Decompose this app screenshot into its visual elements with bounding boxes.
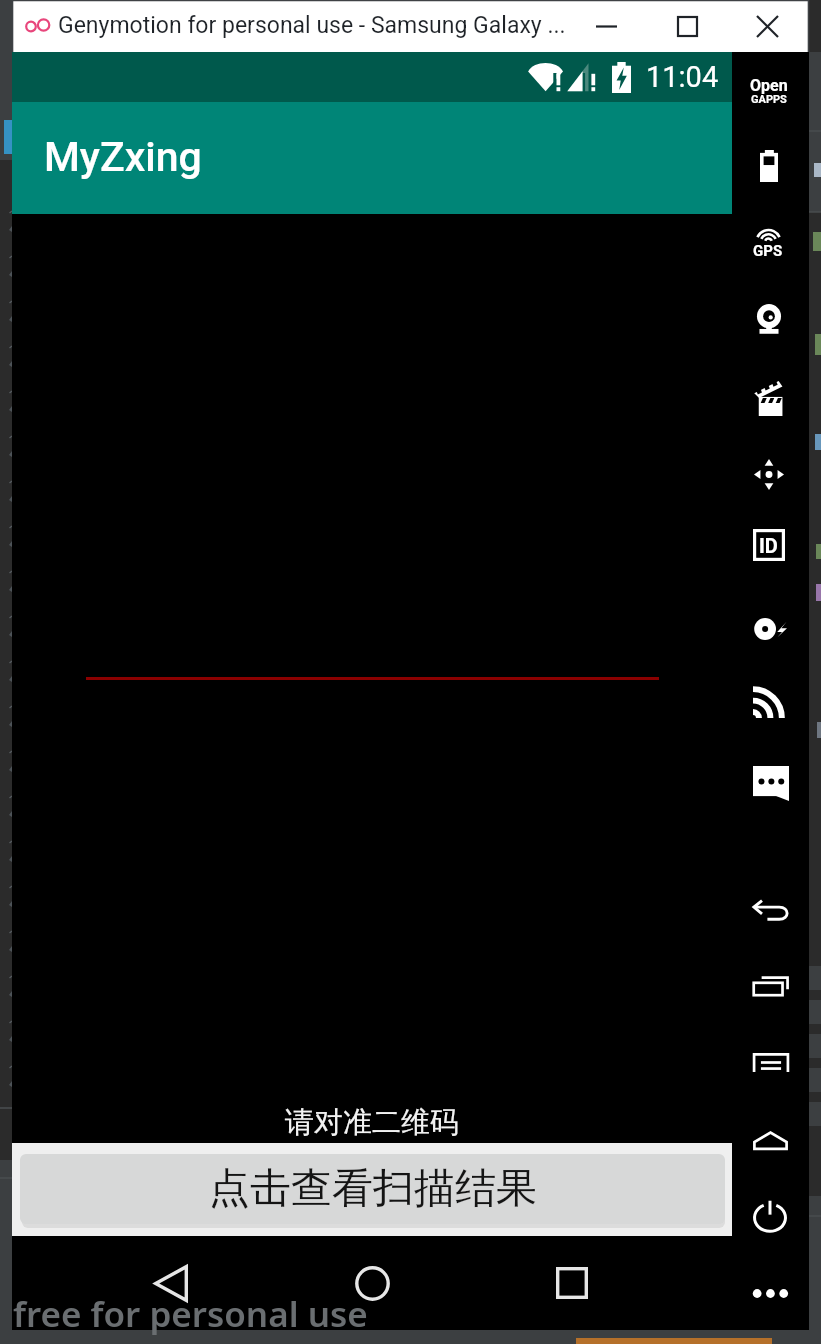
button[interactable]: 点击查看扫描结果	[20, 1154, 725, 1224]
button[interactable]: Open GAPPS	[732, 59, 809, 119]
button[interactable]: Home	[332, 1243, 412, 1323]
staticText: MyZxing	[44, 133, 202, 181]
staticText: 请对准二维码	[285, 1104, 459, 1141]
button[interactable]: GPS	[732, 209, 809, 269]
staticText: 点击查看扫描结果	[209, 1163, 537, 1215]
button[interactable]: Recent apps	[532, 1243, 612, 1323]
button[interactable]: Close	[737, 0, 797, 52]
button[interactable]: Minimize	[576, 0, 636, 52]
button[interactable]: Disk I/O	[732, 599, 809, 659]
button[interactable]: Back	[131, 1243, 211, 1323]
button[interactable]: Record video	[732, 367, 809, 427]
staticText: GPS	[753, 242, 783, 260]
button[interactable]: More options	[732, 1263, 809, 1323]
staticText: Open	[750, 76, 788, 95]
button[interactable]: Home	[732, 1099, 809, 1159]
staticText: ID	[759, 534, 778, 557]
button[interactable]: Maximize	[657, 0, 717, 52]
button[interactable]: Battery	[732, 135, 809, 195]
staticText: free for personal use	[13, 1290, 368, 1338]
button[interactable]: Menu	[732, 1029, 809, 1089]
button[interactable]: Power	[732, 1162, 809, 1222]
staticText: Genymotion for personal use - Samsung Ga…	[58, 12, 566, 39]
button[interactable]: Identifiers	[732, 515, 809, 575]
button[interactable]: Camera	[732, 289, 809, 349]
staticText: 11:04	[646, 60, 719, 94]
button[interactable]: Recent apps	[732, 954, 809, 1014]
button[interactable]: Network	[732, 673, 809, 733]
staticText: GAPPS	[751, 93, 787, 106]
button[interactable]: Back	[732, 878, 809, 938]
button[interactable]: SMS	[732, 745, 809, 805]
button[interactable]: D-pad	[732, 444, 809, 504]
